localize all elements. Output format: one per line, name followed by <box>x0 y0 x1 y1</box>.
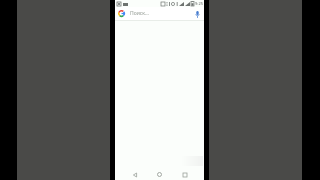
button[interactable]: Back <box>129 169 140 180</box>
button[interactable]: Home <box>154 169 165 180</box>
button[interactable]: Voice search <box>193 10 201 18</box>
staticText: Поиск... <box>130 10 193 17</box>
button[interactable]: Поиск... <box>115 7 204 20</box>
button[interactable]: Recent apps <box>179 169 190 180</box>
staticText: 9:25 <box>195 1 203 6</box>
